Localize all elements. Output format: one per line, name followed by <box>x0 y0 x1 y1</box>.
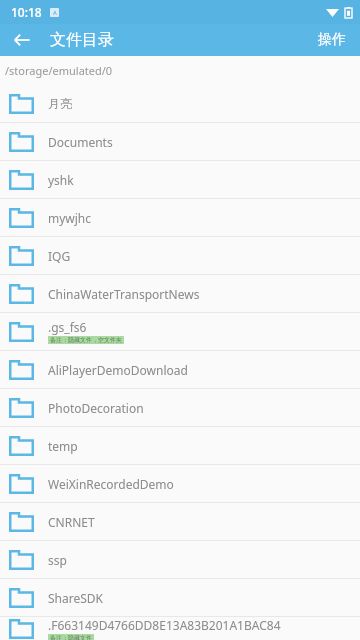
staticText: AliPlayerDemoDownload <box>48 362 188 378</box>
button[interactable]: .gs_fs6 <box>0 313 360 350</box>
staticText: ShareSDK <box>48 590 103 606</box>
staticText: 操作 <box>318 31 346 49</box>
button[interactable]: .F663149D4766DD8E13A83B201A1BAC84 <box>0 617 360 640</box>
staticText: 备注：隐藏文件，空文件夹 <box>50 336 122 344</box>
staticText: .gs_fs6 <box>48 319 87 335</box>
button[interactable]: AliPlayerDemoDownload <box>0 351 360 388</box>
button[interactable]: Back <box>0 24 44 56</box>
button[interactable]: ChinaWaterTransportNews <box>0 275 360 312</box>
staticText: /storage/emulated/0 <box>5 63 113 78</box>
staticText: PhotoDecoration <box>48 400 144 416</box>
button[interactable]: IQG <box>0 237 360 274</box>
staticText: ssp <box>48 552 67 568</box>
staticText: WeiXinRecordedDemo <box>48 476 174 492</box>
staticText: 文件目录 <box>50 30 114 50</box>
staticText: IQG <box>48 248 71 264</box>
button[interactable]: ShareSDK <box>0 579 360 616</box>
staticText: temp <box>48 438 78 454</box>
button[interactable]: ssp <box>0 541 360 578</box>
staticText: Documents <box>48 134 113 150</box>
button[interactable]: 操作 <box>304 24 360 56</box>
staticText: .F663149D4766DD8E13A83B201A1BAC84 <box>48 617 281 633</box>
staticText: CNRNET <box>48 514 95 530</box>
button[interactable]: Documents <box>0 123 360 160</box>
staticText: ChinaWaterTransportNews <box>48 286 200 302</box>
staticText: 10:18 <box>11 4 42 20</box>
button[interactable]: CNRNET <box>0 503 360 540</box>
button[interactable]: WeiXinRecordedDemo <box>0 465 360 502</box>
staticText: 月亮 <box>48 96 72 111</box>
button[interactable]: yshk <box>0 161 360 198</box>
staticText: 备注：隐藏文件 <box>50 634 92 640</box>
staticText: A <box>53 9 57 17</box>
staticText: mywjhc <box>48 210 92 226</box>
button[interactable]: mywjhc <box>0 199 360 236</box>
button[interactable]: PhotoDecoration <box>0 389 360 426</box>
button[interactable]: 月亮 <box>0 85 360 122</box>
staticText: yshk <box>48 172 74 188</box>
button[interactable]: temp <box>0 427 360 464</box>
